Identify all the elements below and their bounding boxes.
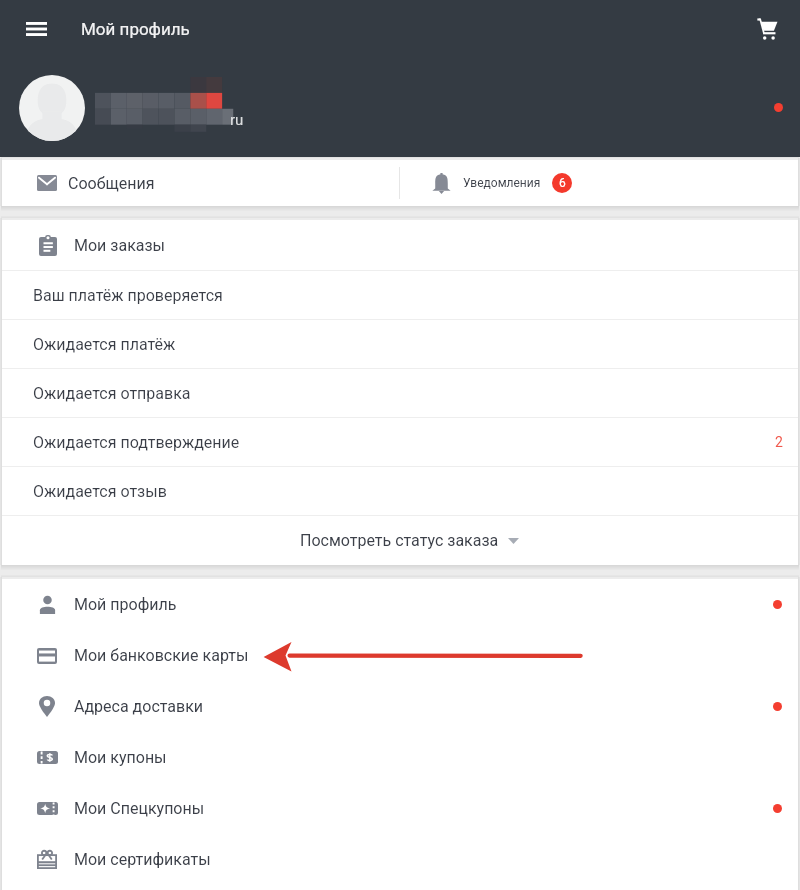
- button[interactable]: Открыть меню: [13, 6, 59, 52]
- button[interactable]: Ожидается платёж: [2, 320, 798, 368]
- button[interactable]: Адреса доставки: [2, 681, 798, 732]
- staticText: Сообщения: [68, 174, 155, 193]
- staticText: Мои сертификаты: [74, 850, 211, 869]
- button[interactable]: Мои купоны: [2, 732, 798, 783]
- staticText: Ожидается подтверждение: [33, 433, 240, 452]
- button[interactable]: Ожидается отзыв: [2, 467, 798, 515]
- button[interactable]: Фото профиля: [19, 75, 85, 141]
- staticText: Мои банковские карты: [74, 646, 249, 665]
- button[interactable]: Посмотреть статус заказа: [2, 516, 798, 565]
- staticText: 2: [775, 434, 783, 450]
- button[interactable]: Мой профиль: [2, 579, 798, 630]
- button[interactable]: Корзина: [745, 8, 789, 52]
- staticText: Ожидается отзыв: [33, 482, 167, 501]
- staticText: Мои Спецкупоны: [74, 799, 205, 818]
- staticText: Мои заказы: [74, 236, 166, 255]
- button[interactable]: Мои Спецкупоны: [2, 783, 798, 834]
- button[interactable]: Ожидается подтверждение: [2, 418, 798, 466]
- staticText: Ваш платёж проверяется: [33, 286, 223, 305]
- staticText: Ожидается отправка: [33, 384, 191, 403]
- button[interactable]: Ожидается отправка: [2, 369, 798, 417]
- staticText: Мои купоны: [74, 748, 167, 767]
- staticText: Мой профиль: [74, 595, 177, 614]
- staticText: 6: [559, 176, 566, 190]
- staticText: Мой профиль: [81, 19, 190, 39]
- button[interactable]: Сообщения: [2, 160, 399, 206]
- button[interactable]: Ваш платёж проверяется: [2, 271, 798, 319]
- staticText: Уведомления: [463, 176, 541, 190]
- staticText: ru: [230, 111, 244, 129]
- button[interactable]: Мои сертификаты: [2, 834, 798, 885]
- button[interactable]: Уведомления: [400, 160, 798, 206]
- button[interactable]: Мои банковские карты: [2, 630, 798, 681]
- staticText: Посмотреть статус заказа: [300, 531, 499, 550]
- staticText: Адреса доставки: [74, 697, 204, 716]
- button[interactable]: Мои заказы: [2, 220, 798, 270]
- staticText: Ожидается платёж: [33, 335, 176, 354]
